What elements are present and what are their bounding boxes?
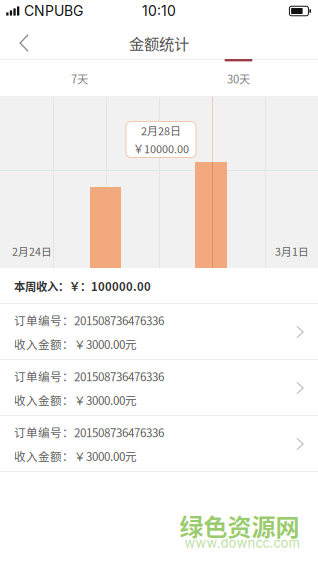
staticText: 收入金额：￥3000.00元 bbox=[14, 335, 137, 352]
staticText: 30天 bbox=[227, 70, 250, 87]
staticText: 金额统计 bbox=[129, 32, 189, 54]
button[interactable]: 订单编号：201508736476336 bbox=[0, 304, 318, 360]
staticText: 2月28日 bbox=[141, 123, 181, 138]
staticText: 7天 bbox=[71, 70, 88, 87]
staticText: 本周收入：￥：100000.00 bbox=[14, 278, 151, 294]
staticText: 订单编号：201508736476336 bbox=[14, 312, 164, 328]
button[interactable]: 30天 bbox=[159, 60, 318, 97]
staticText: 2月24日 bbox=[12, 243, 52, 259]
staticText: 订单编号：201508736476336 bbox=[14, 368, 164, 384]
staticText: 订单编号：201508736476336 bbox=[14, 424, 164, 440]
staticText: CNPUBG bbox=[24, 2, 83, 19]
button[interactable]: 订单编号：201508736476336 bbox=[0, 416, 318, 472]
staticText: 绿色资源网 bbox=[179, 508, 299, 543]
staticText: ￥10000.00 bbox=[133, 140, 189, 156]
staticText: www.downcc.com bbox=[184, 535, 299, 551]
staticText: 收入金额：￥3000.00元 bbox=[14, 391, 137, 408]
button[interactable]: 7天 bbox=[0, 60, 159, 97]
button[interactable]: 订单编号：201508736476336 bbox=[0, 360, 318, 416]
staticText: 10:10 bbox=[142, 2, 176, 19]
button[interactable]: Back bbox=[2, 24, 46, 62]
staticText: 收入金额：￥3000.00元 bbox=[14, 447, 137, 464]
staticText: 3月1日 bbox=[275, 243, 309, 259]
